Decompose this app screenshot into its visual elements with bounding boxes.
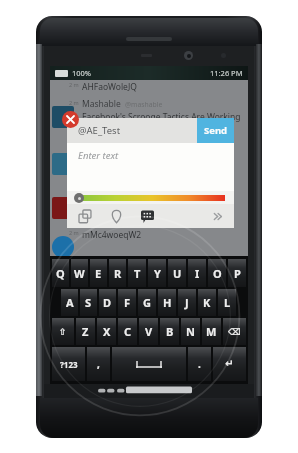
staticText: U [173,266,182,281]
button[interactable]: Attach image [76,205,94,227]
button[interactable]: Send [197,118,234,143]
button[interactable]: N [181,318,200,345]
button[interactable]: Add location [107,205,125,227]
staticText: . [198,357,201,371]
staticText: D [103,295,112,310]
button[interactable]: Backspace [223,318,246,345]
button[interactable]: U [168,259,186,287]
staticText: Enter text [78,149,119,162]
staticText: @mashable [125,100,163,109]
button[interactable]: 2 m [50,145,248,167]
button[interactable]: O [208,259,226,287]
button[interactable]: S [80,289,97,316]
button[interactable]: 2 m [50,189,248,211]
staticText: I [195,266,200,281]
staticText: H [163,295,172,310]
button[interactable]: D [99,289,116,316]
button[interactable]: F [118,289,136,316]
button[interactable]: P [228,259,246,287]
button[interactable]: B [160,318,179,345]
staticText: Facebook's Scrooge Tactics Are Working [82,111,241,123]
button[interactable]: C [118,318,137,345]
button[interactable]: Y [148,259,166,287]
button[interactable]: Close [62,111,79,128]
staticText: W [74,266,85,281]
staticText: Y [154,266,161,281]
button[interactable]: J [178,289,196,316]
button[interactable]: 2 m [50,98,248,123]
button[interactable]: Z [76,318,95,345]
button[interactable]: Shift [52,318,74,345]
staticText: 2 m [69,229,79,236]
staticText: ?123 [60,359,78,370]
button[interactable]: Enter [213,347,246,381]
staticText: K [203,295,211,310]
button[interactable]: T [128,259,146,287]
staticText: Q [56,266,65,281]
staticText: 11:26 PM [210,68,243,78]
staticText: X [103,324,111,339]
staticText: O [213,266,222,281]
button[interactable]: W [71,259,88,287]
staticText: 2 m [69,99,79,106]
staticText: @AE_Test [78,124,121,137]
button[interactable]: Space [112,347,186,381]
button[interactable]: K [198,289,216,316]
button[interactable]: More options [209,205,227,227]
staticText: C [124,324,132,339]
button[interactable]: I [188,259,206,287]
staticText: M [206,324,217,339]
staticText: ⌫ [228,327,241,337]
staticText: ⇧ [59,327,67,337]
button[interactable]: L [218,289,236,316]
staticText: L [224,295,231,310]
staticText: V [145,324,153,339]
button[interactable]: 2 m [50,80,248,93]
staticText: S [85,295,92,310]
button[interactable]: Enter text [67,143,234,191]
button[interactable]: . [188,347,211,381]
button[interactable]: X [97,318,116,345]
staticText: 2 m [69,81,79,88]
button[interactable]: V [139,318,158,345]
staticText: R [114,266,122,281]
staticText: T [134,266,141,281]
button[interactable]: Symbols [52,347,85,381]
staticText: N [186,324,195,339]
button[interactable]: BBM share [138,205,156,227]
staticText: G [143,295,151,310]
staticText: , [97,357,100,371]
staticText: Mashable [82,98,121,110]
staticText: F [124,295,131,310]
button[interactable]: E [90,259,107,287]
staticText: 2 m [69,190,79,197]
button[interactable]: R [109,259,126,287]
staticText: P [234,266,241,281]
staticText: 100% [72,68,92,78]
staticText: AHFaoWoleJQ [82,81,137,93]
staticText: mMc4woeqW2 [82,229,142,241]
staticText: B [166,324,174,339]
staticText: Send [204,124,228,137]
button[interactable]: G [138,289,156,316]
button[interactable]: A [61,289,78,316]
button[interactable]: H [158,289,176,316]
staticText: Z [82,324,89,339]
button[interactable]: 2 m [50,228,248,250]
button[interactable]: Q [52,259,69,287]
staticText: J [185,295,189,310]
staticText: ↵ [225,358,234,370]
staticText: E [95,266,102,281]
button[interactable]: M [202,318,221,345]
button[interactable]: , [87,347,110,381]
staticText: A [66,295,74,310]
